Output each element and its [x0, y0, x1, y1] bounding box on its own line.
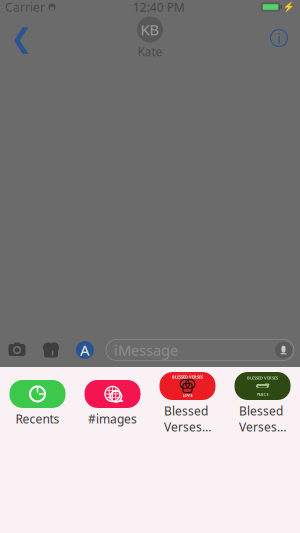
staticText: Recents — [15, 411, 59, 427]
staticText: KB — [140, 20, 159, 39]
staticText: LOVE — [182, 392, 192, 398]
staticText: BLESSED VERSES — [172, 374, 203, 379]
staticText: Blessed Verses… — [239, 403, 286, 435]
button[interactable]: BLESSED VERSES — [150, 372, 225, 435]
staticText: BLESSED VERSES — [247, 375, 278, 380]
staticText: Kate — [137, 43, 162, 59]
button[interactable]: iMessage Apps — [68, 333, 102, 367]
button[interactable]: BLESSED VERSES — [225, 372, 300, 435]
staticText: #images — [88, 411, 137, 427]
staticText: Carrier — [5, 0, 45, 15]
button[interactable]: Recents — [0, 380, 75, 427]
button[interactable]: Digital Touch — [34, 333, 68, 367]
staticText: A — [80, 340, 90, 360]
button[interactable]: Details — [262, 16, 296, 60]
button[interactable]: Camera — [0, 333, 34, 367]
staticText: Blessed Verses… — [164, 403, 211, 435]
staticText: 12:40 PM — [133, 0, 185, 15]
button[interactable]: Back — [4, 16, 38, 60]
staticText: PEACE — [256, 391, 268, 397]
staticText: ⚡ — [283, 2, 295, 12]
button[interactable]: #images — [75, 380, 150, 427]
staticText: i — [277, 29, 281, 47]
staticText: iMessage — [114, 340, 178, 360]
button[interactable]: iMessage — [106, 339, 294, 360]
staticText: ❮ — [10, 23, 32, 53]
